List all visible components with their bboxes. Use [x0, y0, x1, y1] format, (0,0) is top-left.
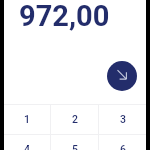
staticText: 2 — [72, 113, 78, 125]
staticText: 3 — [120, 113, 126, 125]
button[interactable]: 6 — [99, 134, 146, 150]
button[interactable]: 5 — [51, 134, 98, 150]
button[interactable]: 2 — [51, 104, 98, 134]
button[interactable]: 3 — [99, 104, 146, 134]
button[interactable]: Receive money — [107, 61, 137, 91]
staticText: 4 — [24, 143, 30, 150]
button[interactable]: 1 — [4, 104, 50, 134]
staticText: 972,00 — [19, 0, 110, 33]
staticText: 1 — [24, 113, 30, 125]
staticText: 5 — [72, 143, 78, 150]
button[interactable]: 4 — [4, 134, 50, 150]
staticText: 6 — [120, 143, 126, 150]
